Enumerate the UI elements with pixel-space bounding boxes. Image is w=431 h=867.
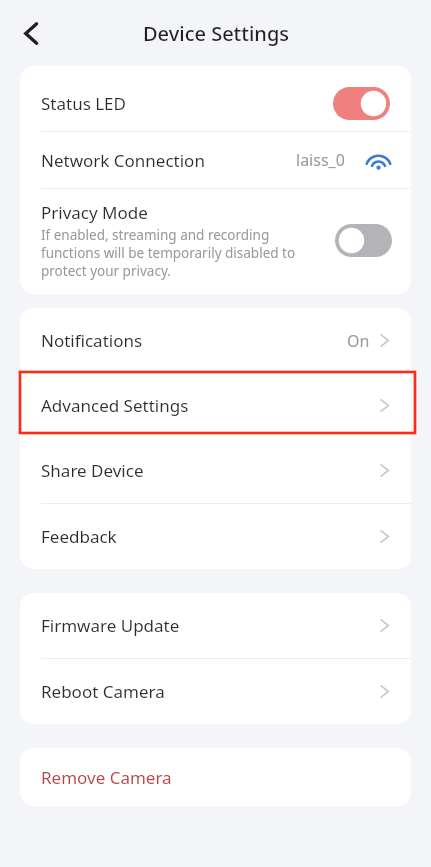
- staticText: Notifications: [41, 329, 143, 352]
- staticText: Network Connection: [41, 149, 205, 172]
- button[interactable]: Remove Camera: [20, 748, 411, 806]
- other: Wi-Fi connected: [365, 150, 392, 171]
- staticText: Firmware Update: [41, 614, 180, 637]
- button[interactable]: Toggle on: [333, 87, 390, 120]
- staticText: Status LED: [41, 92, 126, 115]
- staticText: Feedback: [41, 525, 117, 548]
- button[interactable]: Toggle off: [335, 224, 392, 257]
- button[interactable]: Share Device: [20, 438, 411, 503]
- staticText: If enabled, streaming and recording func…: [41, 226, 321, 280]
- button[interactable]: Network Connection: [20, 132, 411, 188]
- button[interactable]: Notifications: [20, 308, 411, 373]
- staticText: Share Device: [41, 459, 144, 482]
- staticText: Device Settings: [143, 20, 289, 47]
- staticText: On: [347, 330, 370, 352]
- staticText: Advanced Settings: [41, 394, 189, 417]
- button[interactable]: Firmware Update: [20, 593, 411, 658]
- button[interactable]: Status LED: [20, 75, 411, 131]
- staticText: Privacy Mode: [41, 201, 148, 224]
- staticText: Remove Camera: [41, 766, 172, 789]
- staticText: laiss_0: [296, 149, 345, 171]
- button[interactable]: Advanced Settings: [20, 373, 411, 438]
- button[interactable]: Reboot Camera: [20, 659, 411, 724]
- staticText: Reboot Camera: [41, 680, 165, 703]
- button[interactable]: Privacy Mode: [20, 189, 411, 294]
- button[interactable]: Back: [9, 11, 53, 55]
- button[interactable]: Feedback: [20, 504, 411, 569]
